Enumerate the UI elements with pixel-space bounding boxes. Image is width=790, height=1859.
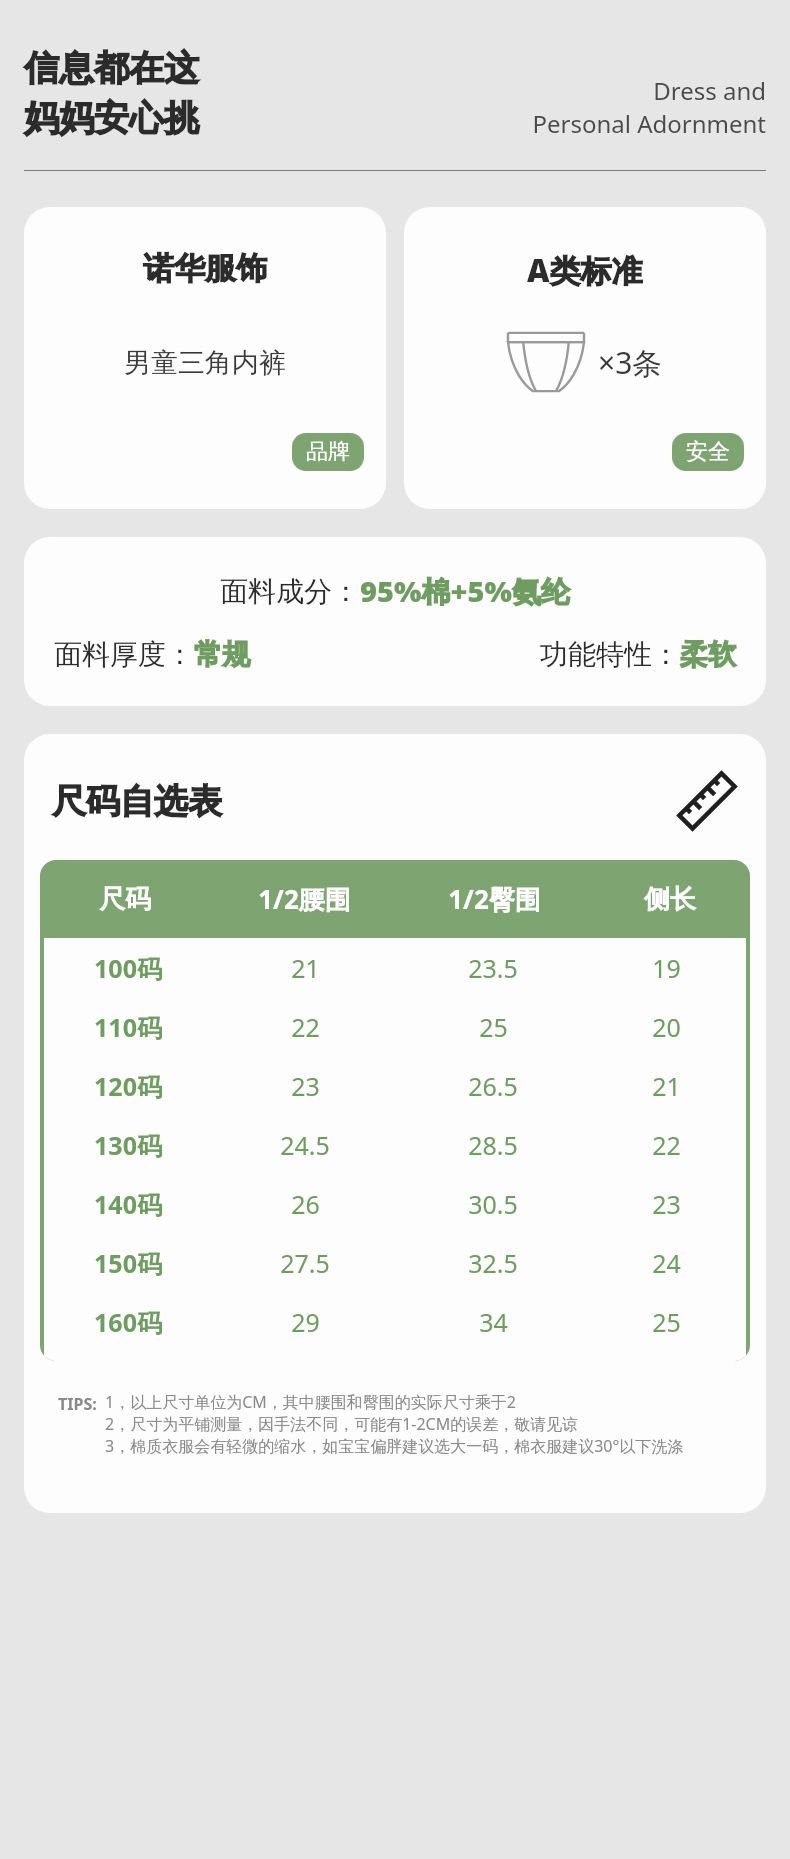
staticText: 妈妈安心挑 <box>24 96 199 140</box>
staticText: 110码 <box>94 1010 162 1044</box>
button[interactable]: 120码 <box>44 1056 746 1115</box>
staticText: 140码 <box>94 1187 162 1221</box>
staticText: 22 <box>291 1010 320 1044</box>
staticText: 品牌 <box>306 438 350 466</box>
button[interactable]: 140码 <box>44 1174 746 1233</box>
staticText: 26 <box>291 1187 320 1221</box>
staticText: ×3条 <box>598 342 663 383</box>
staticText: 28.5 <box>468 1128 518 1162</box>
staticText: 3，棉质衣服会有轻微的缩水，如宝宝偏胖建议选大一码，棉衣服建议30°以下洗涤 <box>105 1435 684 1457</box>
staticText: 95%棉+5%氨纶 <box>360 571 570 611</box>
staticText: 2，尺寸为平铺测量，因手法不同，可能有1-2CM的误差，敬请见谅 <box>105 1413 579 1435</box>
staticText: 1，以上尺寸单位为CM，其中腰围和臀围的实际尺寸乘于2 <box>105 1391 516 1413</box>
staticText: 21 <box>291 951 320 985</box>
staticText: 25 <box>652 1305 681 1339</box>
staticText: 安全 <box>686 438 730 466</box>
staticText: 23.5 <box>468 951 518 985</box>
staticText: 柔软 <box>680 637 736 672</box>
staticText: 23 <box>652 1187 681 1221</box>
button[interactable]: 品牌 <box>292 433 364 471</box>
staticText: 100码 <box>94 951 162 985</box>
staticText: 29 <box>291 1305 320 1339</box>
staticText: 160码 <box>94 1305 162 1339</box>
staticText: 诺华服饰 <box>143 249 267 288</box>
button[interactable]: 160码 <box>44 1292 746 1351</box>
staticText: 1/2臀围 <box>448 881 541 917</box>
button[interactable]: 130码 <box>44 1115 746 1174</box>
staticText: 25 <box>479 1010 508 1044</box>
staticText: 27.5 <box>280 1246 330 1280</box>
staticText: 22 <box>652 1128 681 1162</box>
staticText: 120码 <box>94 1069 162 1103</box>
staticText: 常规 <box>194 637 250 672</box>
staticText: 32.5 <box>468 1246 518 1280</box>
staticText: 19 <box>652 951 681 985</box>
button[interactable]: 110码 <box>44 997 746 1056</box>
staticText: 尺码自选表 <box>52 780 676 823</box>
staticText: 150码 <box>94 1246 162 1280</box>
staticText: 130码 <box>94 1128 162 1162</box>
staticText: 1/2腰围 <box>258 881 351 917</box>
staticText: 尺码 <box>99 883 151 916</box>
staticText: 26.5 <box>468 1069 518 1103</box>
staticText: 功能特性： <box>540 637 680 672</box>
button[interactable]: 安全 <box>672 433 744 471</box>
staticText: 20 <box>652 1010 681 1044</box>
staticText: 24 <box>652 1246 681 1280</box>
staticText: 男童三角内裤 <box>124 346 286 380</box>
staticText: Dress and <box>653 74 766 107</box>
staticText: 信息都在这 <box>24 46 199 90</box>
staticText: 34 <box>479 1305 508 1339</box>
staticText: 23 <box>291 1069 320 1103</box>
staticText: 30.5 <box>468 1187 518 1221</box>
button[interactable]: 诺华服饰 <box>24 207 386 509</box>
staticText: Personal Adornment <box>532 107 766 140</box>
button[interactable]: 面料成分： <box>24 537 766 706</box>
staticText: TIPS: <box>58 1393 97 1415</box>
other: Briefs <box>508 331 584 393</box>
staticText: 21 <box>652 1069 681 1103</box>
button[interactable]: A类标准 <box>404 207 766 509</box>
button[interactable]: 100码 <box>44 938 746 997</box>
button[interactable]: 150码 <box>44 1233 746 1292</box>
other: Size ruler <box>676 770 738 832</box>
staticText: 面料成分： <box>220 574 360 609</box>
staticText: 面料厚度： <box>54 637 194 672</box>
staticText: A类标准 <box>527 249 643 291</box>
staticText: 24.5 <box>280 1128 330 1162</box>
staticText: 侧长 <box>644 883 696 916</box>
